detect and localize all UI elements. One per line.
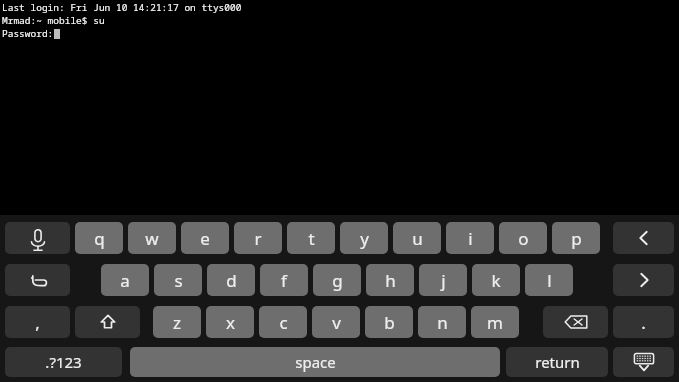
- staticText: return: [535, 352, 580, 372]
- button[interactable]: e: [181, 222, 229, 254]
- staticText: k: [491, 269, 501, 292]
- staticText: t: [308, 227, 315, 250]
- button[interactable]: q: [75, 222, 123, 254]
- staticText: .?123: [45, 352, 82, 372]
- staticText: d: [226, 269, 237, 292]
- staticText: u: [412, 227, 423, 250]
- staticText: r: [254, 227, 262, 250]
- staticText: n: [437, 311, 448, 334]
- button[interactable]: f: [260, 264, 308, 296]
- button[interactable]: Right: [613, 264, 674, 296]
- button[interactable]: c: [259, 306, 307, 338]
- button[interactable]: Tab: [5, 264, 70, 296]
- staticText: w: [145, 227, 159, 250]
- staticText: a: [120, 269, 130, 292]
- staticText: g: [332, 269, 343, 292]
- staticText: f: [281, 269, 287, 292]
- button[interactable]: Backspace: [543, 306, 608, 338]
- staticText: c: [279, 311, 288, 334]
- staticText: i: [468, 227, 473, 250]
- staticText: j: [441, 269, 446, 292]
- staticText: p: [571, 227, 582, 250]
- button[interactable]: y: [340, 222, 388, 254]
- button[interactable]: w: [128, 222, 176, 254]
- button[interactable]: t: [287, 222, 335, 254]
- staticText: m: [487, 311, 503, 334]
- button[interactable]: x: [206, 306, 254, 338]
- button[interactable]: space: [130, 347, 500, 377]
- staticText: x: [226, 311, 235, 334]
- staticText: .: [641, 311, 646, 334]
- staticText: s: [174, 269, 183, 292]
- button[interactable]: o: [499, 222, 547, 254]
- button[interactable]: v: [312, 306, 360, 338]
- staticText: Password:: [2, 27, 54, 40]
- button[interactable]: k: [472, 264, 520, 296]
- staticText: e: [200, 227, 210, 250]
- staticText: Mrmad:~ mobile$ su: [2, 14, 105, 27]
- button[interactable]: b: [365, 306, 413, 338]
- staticText: Last login: Fri Jun 10 14:21:17 on ttys0…: [2, 1, 242, 14]
- button[interactable]: j: [419, 264, 467, 296]
- button[interactable]: a: [101, 264, 149, 296]
- button[interactable]: .?123: [5, 347, 122, 377]
- button[interactable]: z: [153, 306, 201, 338]
- button[interactable]: n: [418, 306, 466, 338]
- staticText: o: [518, 227, 529, 250]
- button[interactable]: i: [446, 222, 494, 254]
- button[interactable]: h: [366, 264, 414, 296]
- staticText: ,: [35, 311, 40, 334]
- button[interactable]: u: [393, 222, 441, 254]
- staticText: q: [94, 227, 105, 250]
- staticText: y: [360, 227, 369, 250]
- staticText: h: [385, 269, 396, 292]
- button[interactable]: Left: [613, 222, 674, 254]
- button[interactable]: p: [552, 222, 600, 254]
- button[interactable]: return: [506, 347, 608, 377]
- button[interactable]: Shift: [75, 306, 140, 338]
- staticText: l: [547, 269, 552, 292]
- button[interactable]: Dictation: [5, 222, 70, 254]
- button[interactable]: .: [613, 306, 674, 338]
- button[interactable]: s: [154, 264, 202, 296]
- button[interactable]: r: [234, 222, 282, 254]
- button[interactable]: Hide keyboard: [613, 347, 674, 377]
- staticText: space: [295, 352, 336, 372]
- button[interactable]: m: [471, 306, 519, 338]
- staticText: b: [384, 311, 395, 334]
- button[interactable]: ,: [5, 306, 70, 338]
- button[interactable]: l: [525, 264, 573, 296]
- button[interactable]: d: [207, 264, 255, 296]
- staticText: z: [173, 311, 181, 334]
- button[interactable]: g: [313, 264, 361, 296]
- staticText: v: [332, 311, 341, 334]
